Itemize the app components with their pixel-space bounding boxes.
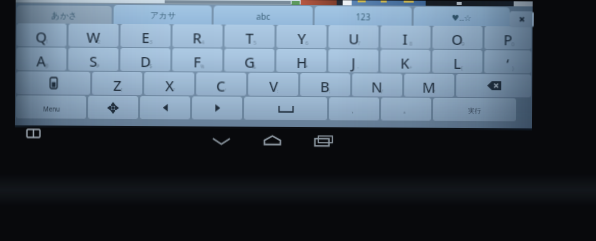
button[interactable]: Menu [16, 95, 86, 119]
staticText: Q [35, 26, 47, 46]
button[interactable] [244, 97, 327, 120]
staticText: 7 [357, 40, 360, 47]
button[interactable]: X [144, 72, 194, 95]
staticText: ; [329, 88, 331, 95]
button[interactable]: Home [263, 134, 282, 147]
staticText: " [173, 87, 176, 94]
staticText: C [216, 75, 226, 96]
button[interactable] [16, 71, 90, 95]
button[interactable]: L [432, 50, 482, 73]
button[interactable]: W [68, 24, 118, 47]
staticText: 9 [461, 41, 464, 48]
button[interactable] [88, 96, 138, 119]
staticText: Z [113, 75, 122, 95]
button[interactable]: N [352, 73, 402, 97]
button[interactable]: U [328, 25, 378, 48]
button[interactable]: Z [92, 72, 142, 95]
button[interactable]: 123 [315, 6, 412, 26]
button[interactable] [140, 96, 190, 119]
staticText: 実行 [468, 107, 481, 115]
button[interactable]: ‘ [484, 50, 531, 73]
button[interactable]: Recent apps [315, 135, 334, 147]
button[interactable] [456, 74, 531, 97]
staticText: T [245, 28, 254, 48]
button[interactable]: R [172, 24, 222, 48]
button[interactable]: Back [211, 135, 232, 148]
staticText: S [89, 51, 97, 71]
button[interactable]: O [432, 26, 482, 49]
staticText: D [140, 51, 151, 71]
staticText: 6 [305, 40, 308, 47]
button[interactable]: あかさ [17, 5, 112, 24]
staticText: H [296, 52, 307, 72]
button[interactable]: I [380, 25, 430, 49]
staticText: ! [121, 87, 123, 94]
button[interactable]: Q [16, 23, 66, 47]
staticText: 、 [351, 105, 358, 114]
staticText: $ [149, 63, 152, 70]
staticText: 5 [253, 40, 256, 47]
button[interactable]: Switch keyboard [27, 129, 40, 137]
staticText: F [193, 51, 201, 71]
button[interactable] [192, 96, 242, 120]
staticText: X [165, 75, 174, 95]
staticText: 。 [403, 106, 410, 115]
staticText: * [305, 64, 308, 71]
button[interactable]: G [224, 49, 274, 72]
staticText: 1 [45, 38, 48, 45]
button[interactable]: E [120, 24, 170, 47]
button[interactable]: V [248, 73, 298, 96]
staticText: U [348, 28, 359, 48]
button[interactable]: アカサ [114, 5, 212, 24]
staticText: R [192, 27, 202, 47]
button[interactable]: F [172, 48, 222, 72]
staticText: - [357, 64, 359, 71]
staticText: K [400, 53, 410, 73]
button[interactable]: 実行 [433, 98, 516, 121]
staticText: ✖ [519, 15, 526, 24]
button[interactable]: 、 [329, 97, 379, 120]
staticText: N [371, 76, 383, 96]
button[interactable]: B [300, 73, 350, 96]
staticText: 2 [97, 39, 100, 46]
staticText: A [36, 50, 46, 70]
staticText: B [320, 76, 330, 96]
button[interactable]: abc [214, 5, 313, 25]
staticText: @ [44, 62, 49, 69]
staticText: J [351, 52, 356, 72]
staticText: ? [433, 89, 436, 96]
button[interactable]: D [120, 48, 170, 71]
staticText: 8 [409, 41, 412, 48]
staticText: 123 [356, 11, 371, 23]
staticText: # [96, 63, 100, 70]
staticText: W [86, 27, 100, 47]
staticText: % [200, 63, 205, 70]
staticText: : [277, 88, 279, 95]
button[interactable]: T [224, 25, 274, 48]
staticText: O [451, 29, 463, 49]
staticText: アカサ [150, 10, 177, 21]
button[interactable]: C [196, 72, 246, 96]
button[interactable]: S [68, 48, 118, 71]
staticText: / [381, 88, 383, 95]
staticText: P [503, 29, 512, 49]
button[interactable]: K [380, 49, 430, 73]
staticText: ‘ [506, 53, 509, 73]
button[interactable]: ♥‥☆ [414, 7, 510, 26]
staticText: ) [512, 65, 514, 72]
button[interactable]: A [16, 47, 66, 71]
button[interactable]: J [328, 49, 378, 72]
button[interactable]: 。 [381, 97, 431, 121]
staticText: ( [461, 65, 463, 72]
staticText: 4 [201, 39, 204, 46]
button[interactable]: Y [276, 25, 326, 48]
staticText: 3 [149, 39, 152, 46]
staticText: Menu [43, 104, 60, 113]
button[interactable]: H [276, 49, 326, 72]
staticText: ' [225, 88, 227, 95]
button[interactable]: M [404, 74, 454, 97]
button[interactable]: Close keyboard [510, 11, 534, 27]
button[interactable]: P [484, 26, 531, 49]
staticText: ♥‥☆ [452, 12, 472, 24]
staticText: + [409, 65, 412, 72]
